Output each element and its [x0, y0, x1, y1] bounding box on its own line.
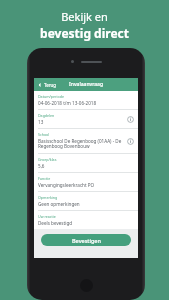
staticText: Groep/klas	[38, 157, 57, 162]
button[interactable]: Opmerking	[34, 192, 138, 211]
staticText: Bekijk en	[61, 9, 108, 24]
button[interactable]: School	[34, 129, 138, 154]
staticText: Geen opmerkingen	[38, 201, 80, 207]
staticText: Dagdelen	[38, 113, 55, 118]
staticText: Bevestigen	[72, 237, 101, 244]
button[interactable]: Groep/klas	[34, 154, 138, 173]
button[interactable]: Info	[127, 138, 134, 145]
button[interactable]: Datum/periode	[34, 91, 138, 110]
button[interactable]: Dagdelen	[34, 110, 138, 129]
staticText: Basisschool De Regenboog (01AA) - De Reg…	[38, 138, 122, 150]
staticText: 04-06-2018 t/m 13-06-2018	[38, 100, 97, 106]
staticText: 13	[38, 119, 44, 125]
staticText: bevestig direct	[40, 25, 129, 41]
staticText: 5,6	[38, 163, 45, 169]
button[interactable]: Uw reactie	[34, 211, 138, 229]
button[interactable]: Functie	[34, 173, 138, 192]
staticText: School	[38, 132, 50, 137]
button[interactable]: Bevestigen	[41, 234, 131, 246]
staticText: Uw reactie	[38, 214, 56, 219]
button[interactable]: Info	[127, 116, 134, 123]
button[interactable]: Terug	[37, 81, 58, 89]
staticText: Vervangingsleerkracht PO	[38, 182, 95, 188]
staticText: Functie	[38, 176, 51, 181]
staticText: Deels bevestigd	[38, 220, 73, 226]
staticText: Invalaanvraag	[69, 81, 104, 88]
staticText: Terug	[44, 82, 57, 88]
staticText: Opmerking	[38, 195, 58, 200]
staticText: Datum/periode	[38, 94, 64, 99]
